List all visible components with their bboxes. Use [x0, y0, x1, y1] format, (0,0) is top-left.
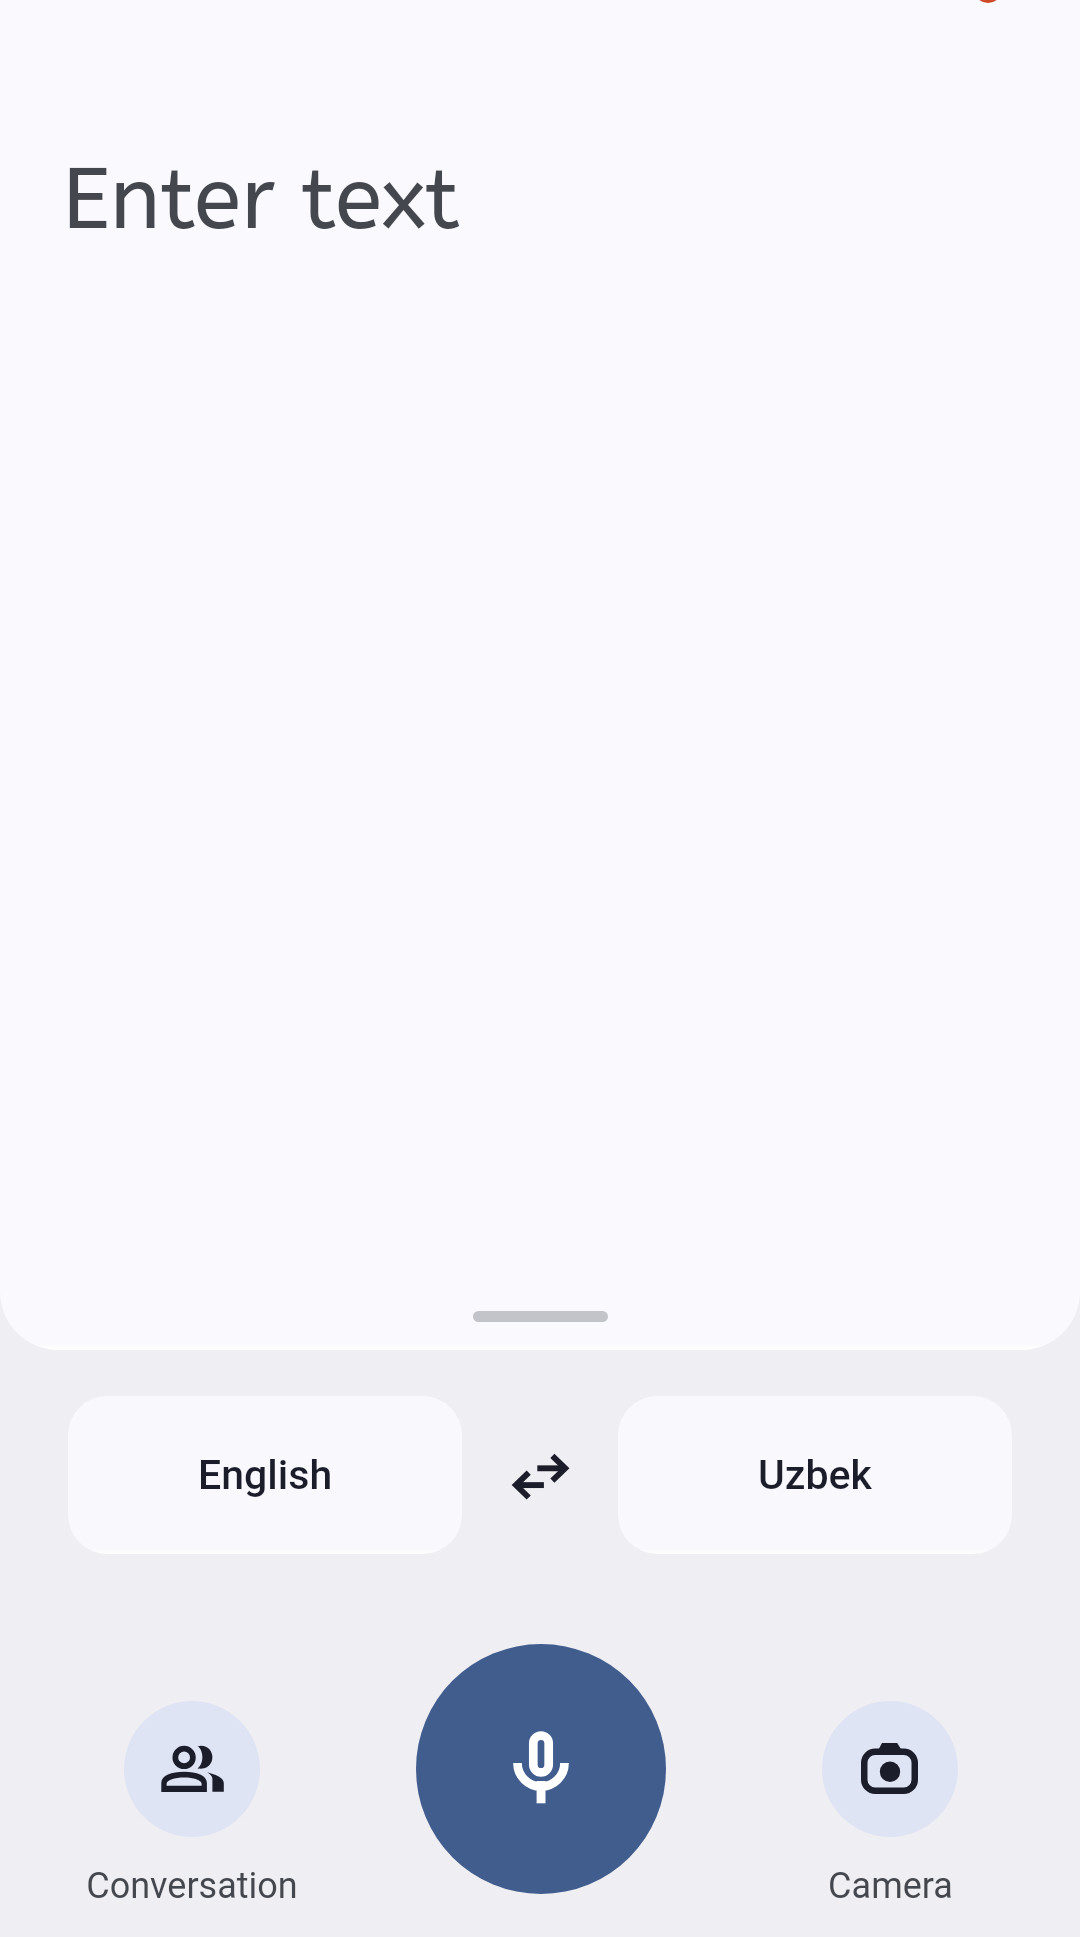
staticText: Uzbek	[758, 1451, 872, 1499]
button[interactable]: Uzbek	[618, 1396, 1012, 1554]
button[interactable]: Enter text	[0, 0, 1080, 1350]
button[interactable]: Swap languages	[462, 1396, 618, 1554]
button[interactable]: Speak	[416, 1644, 666, 1894]
staticText: Camera	[828, 1865, 953, 1907]
button[interactable]: Conversation	[40, 1701, 344, 1907]
staticText: Conversation	[86, 1865, 298, 1907]
staticText: Enter text	[62, 148, 461, 251]
staticText: English	[198, 1451, 333, 1499]
button[interactable]: English	[68, 1396, 462, 1554]
button[interactable]: Camera	[738, 1701, 1042, 1907]
